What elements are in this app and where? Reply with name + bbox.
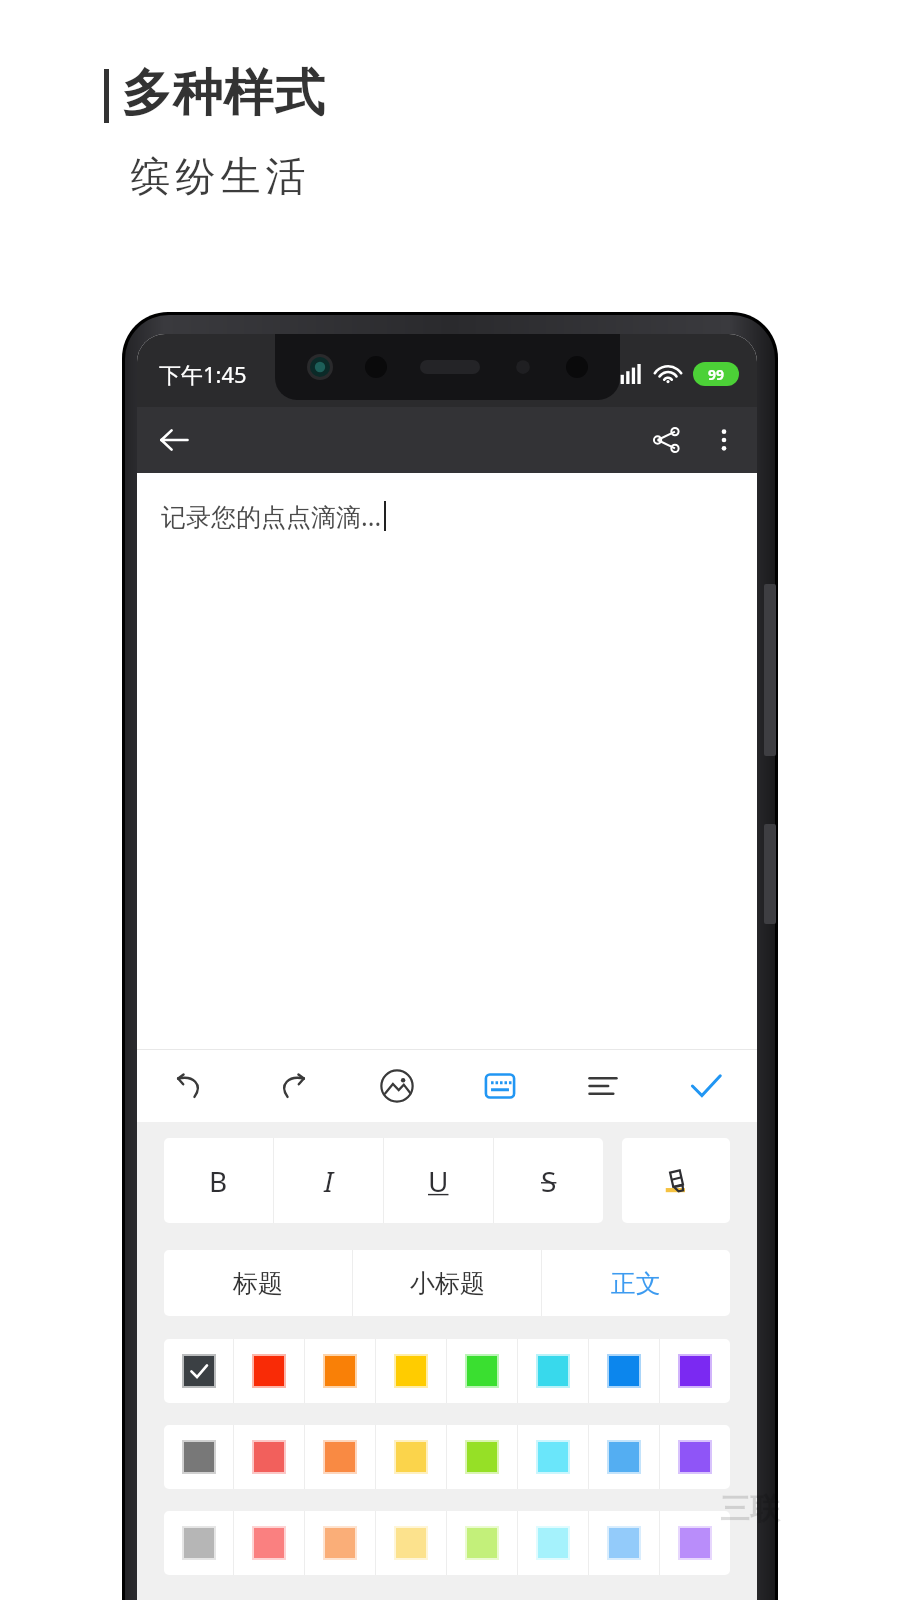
staticText: 99 — [708, 365, 725, 384]
button[interactable]: Insert image — [345, 1050, 448, 1122]
button[interactable]: Color 0 — [164, 1339, 233, 1403]
button[interactable]: Undo — [137, 1050, 241, 1122]
staticText: 缤纷生活 — [128, 151, 308, 201]
button[interactable]: More options — [701, 417, 747, 463]
button[interactable]: Color 1 — [234, 1339, 304, 1403]
button[interactable]: Back — [149, 415, 199, 465]
staticText: 标题 — [233, 1268, 283, 1299]
button[interactable]: Color 7 — [660, 1511, 730, 1575]
button[interactable]: Color 5 — [518, 1339, 588, 1403]
button[interactable]: Color 6 — [589, 1511, 659, 1575]
button[interactable]: Color 0 — [164, 1511, 233, 1575]
button[interactable]: Done — [654, 1050, 757, 1122]
staticText: 三联 — [720, 1490, 780, 1528]
button[interactable]: Color 2 — [305, 1425, 375, 1489]
button[interactable]: Color 3 — [376, 1511, 446, 1575]
button[interactable]: Color 7 — [660, 1339, 730, 1403]
staticText: 正文 — [611, 1268, 661, 1299]
button[interactable]: Color 3 — [376, 1425, 446, 1489]
button[interactable]: Align — [551, 1050, 654, 1122]
button[interactable]: Highlighter — [622, 1138, 730, 1223]
button[interactable]: Color 5 — [518, 1511, 588, 1575]
staticText: 多种样式 — [121, 62, 325, 125]
button[interactable]: 标题 — [164, 1250, 352, 1316]
staticText: S — [541, 1162, 557, 1200]
staticText: 下午1:45 — [159, 359, 247, 389]
staticText: B — [209, 1162, 228, 1200]
button[interactable]: Color 2 — [305, 1511, 375, 1575]
button[interactable]: Text style — [448, 1050, 551, 1122]
button[interactable]: Color 7 — [660, 1425, 730, 1489]
button[interactable]: Redo — [241, 1050, 345, 1122]
button[interactable]: I — [274, 1138, 383, 1223]
button[interactable]: Color 2 — [305, 1339, 375, 1403]
button[interactable]: B — [164, 1138, 273, 1223]
staticText: I — [324, 1162, 334, 1200]
button[interactable]: Share — [641, 415, 691, 465]
button[interactable]: Color 6 — [589, 1425, 659, 1489]
button[interactable]: 正文 — [542, 1250, 730, 1316]
button[interactable]: 小标题 — [353, 1250, 541, 1316]
button[interactable]: Color 4 — [447, 1511, 517, 1575]
staticText: U — [428, 1162, 449, 1200]
button[interactable]: Color 3 — [376, 1339, 446, 1403]
button[interactable]: S — [494, 1138, 603, 1223]
staticText: 小标题 — [410, 1268, 485, 1299]
button[interactable]: Color 0 — [164, 1425, 233, 1489]
button[interactable]: Color 4 — [447, 1339, 517, 1403]
button[interactable]: Color 1 — [234, 1425, 304, 1489]
button[interactable]: Color 4 — [447, 1425, 517, 1489]
staticText: 记录您的点点滴滴... — [161, 499, 382, 533]
button[interactable]: Color 6 — [589, 1339, 659, 1403]
button[interactable]: U — [384, 1138, 493, 1223]
button[interactable]: Color 1 — [234, 1511, 304, 1575]
button[interactable]: Color 5 — [518, 1425, 588, 1489]
